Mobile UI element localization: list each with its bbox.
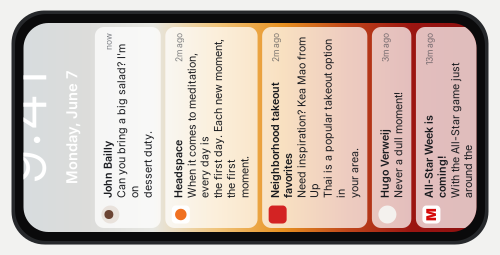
staticText: dessert duty. <box>179 19 246 32</box>
staticText: moment. <box>179 116 221 128</box>
button[interactable]: Neighborhood takeout favorites <box>149 140 350 245</box>
button[interactable]: Headspace <box>149 43 350 135</box>
staticText: Headspace <box>179 49 237 62</box>
staticText: Can you bring a big salad? I'm on <box>179 0 333 18</box>
staticText: When it comes to meditation, every day i… <box>179 63 324 89</box>
staticText: the first day. Each new moment, the firs… <box>179 89 338 115</box>
staticText: your area. <box>179 225 229 238</box>
button[interactable]: John Bailly <box>149 0 350 38</box>
staticText: Need inspiration? Kea Mao from Up <box>179 173 340 198</box>
staticText: 2m ago <box>315 148 344 158</box>
staticText: Thai is a popular takeout option in <box>179 199 338 225</box>
staticText: 2m ago <box>315 51 344 62</box>
staticText: Neighborhood takeout favorites <box>179 146 295 172</box>
